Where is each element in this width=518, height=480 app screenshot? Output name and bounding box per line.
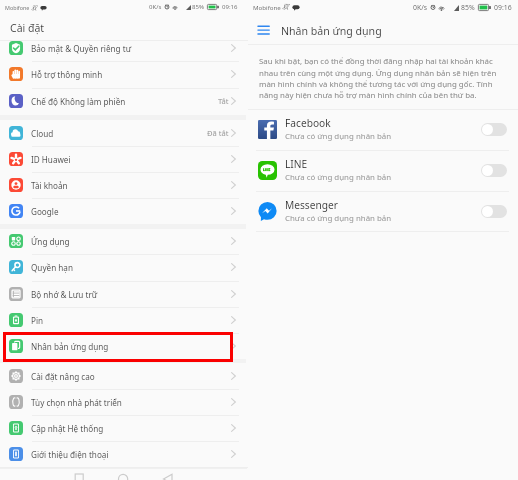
button[interactable]: Ứng dụng	[0, 228, 248, 254]
staticText: Hỗ trợ thông minh	[31, 69, 103, 80]
button[interactable]: Bảo mật & Quyền riêng tư	[0, 40, 248, 61]
button[interactable]: Facebook	[248, 109, 518, 150]
staticText: Cloud	[31, 128, 54, 139]
staticText: Mobifone	[5, 4, 30, 11]
staticText: Quyền hạn	[31, 262, 73, 273]
button[interactable]: Nhân bản ứng dụng	[0, 333, 248, 359]
staticText: Tắt	[218, 96, 229, 106]
staticText: 09:16	[222, 3, 238, 11]
button[interactable]: Bộ nhớ & Lưu trữ	[0, 281, 248, 307]
staticText: Google	[31, 206, 59, 217]
staticText: 85%	[461, 3, 475, 12]
staticText: Mobifone	[253, 3, 281, 11]
button[interactable]: Toggle LINE app twin	[481, 164, 507, 177]
staticText: 85%	[192, 3, 204, 11]
staticText: Đã tắt	[207, 128, 229, 138]
button[interactable]: Giới thiệu điện thoại	[0, 441, 248, 467]
button[interactable]: Home	[116, 470, 130, 480]
staticText: Chưa có ứng dụng nhân bản	[285, 131, 392, 142]
staticText: Chế độ Không làm phiền	[31, 96, 126, 107]
staticText: Tài khoản	[31, 180, 68, 191]
staticText: Chưa có ứng dụng nhân bản	[285, 213, 392, 224]
button[interactable]: Cập nhật Hệ thống	[0, 415, 248, 441]
button[interactable]: Tùy chọn nhà phát triển	[0, 389, 248, 415]
staticText: Bảo mật & Quyền riêng tư	[31, 43, 132, 54]
staticText: 双	[282, 3, 289, 11]
staticText: ID Huawei	[31, 154, 71, 165]
staticText: Tùy chọn nhà phát triển	[31, 397, 122, 408]
staticText: 09:16	[494, 3, 512, 12]
staticText: Ứng dụng	[31, 236, 70, 247]
button[interactable]: Quyền hạn	[0, 254, 248, 280]
button[interactable]: Cloud	[0, 120, 248, 146]
button[interactable]: Messenger	[248, 191, 518, 232]
staticText: Giới thiệu điện thoại	[31, 449, 109, 460]
staticText: Cài đặt	[10, 21, 45, 35]
staticText: Messenger	[285, 198, 339, 212]
staticText: Chưa có ứng dụng nhân bản	[285, 172, 392, 183]
staticText: 0K/s	[413, 3, 428, 12]
staticText: Nhân bản ứng dụng	[31, 341, 109, 352]
staticText: Nhân bản ứng dụng	[281, 24, 382, 38]
staticText: Cập nhật Hệ thống	[31, 423, 104, 434]
button[interactable]: Tài khoản	[0, 172, 248, 198]
button[interactable]: Recent apps	[73, 470, 87, 480]
button[interactable]: Google	[0, 198, 248, 224]
button[interactable]: ID Huawei	[0, 146, 248, 172]
button[interactable]: Hỗ trợ thông minh	[0, 61, 248, 87]
staticText: Pin	[31, 315, 44, 326]
button[interactable]: Cài đặt nâng cao	[0, 363, 248, 389]
staticText: Cài đặt nâng cao	[31, 371, 95, 382]
button[interactable]: Pin	[0, 307, 248, 333]
button[interactable]: Open navigation menu	[257, 21, 271, 35]
staticText: Bộ nhớ & Lưu trữ	[31, 289, 98, 300]
staticText: 0K/s	[149, 3, 162, 11]
button[interactable]: Back	[161, 470, 175, 480]
button[interactable]: Toggle Messenger app twin	[481, 205, 507, 218]
staticText: Sau khi bật, bạn có thể đồng thời đăng n…	[259, 56, 497, 100]
staticText: 双	[31, 4, 37, 11]
button[interactable]: LINE	[248, 150, 518, 191]
button[interactable]: Toggle Facebook app twin	[481, 123, 507, 136]
button[interactable]: Chế độ Không làm phiền	[0, 88, 248, 114]
staticText: LINE	[285, 157, 308, 171]
staticText: Facebook	[285, 116, 331, 130]
